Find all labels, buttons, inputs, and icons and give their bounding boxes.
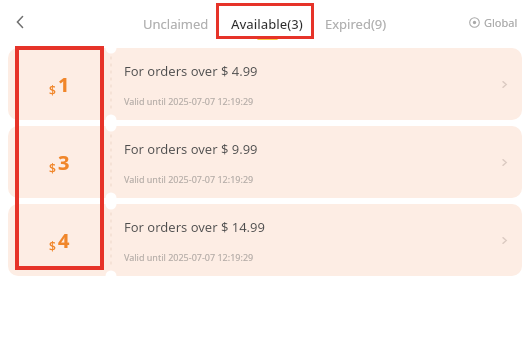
staticText: 4	[58, 227, 70, 254]
button[interactable]: Global	[465, 11, 522, 34]
button[interactable]: $	[8, 48, 522, 120]
staticText: For orders over $ 14.99	[124, 218, 265, 236]
staticText: $	[49, 238, 56, 254]
staticText: For orders over $ 4.99	[124, 62, 258, 80]
staticText: 3	[58, 149, 70, 176]
button[interactable]: Unclaimed	[139, 5, 213, 40]
staticText: Unclaimed	[143, 15, 209, 33]
button[interactable]: Expired(9)	[321, 5, 391, 40]
staticText: Available(3)	[231, 15, 303, 33]
staticText: Expired(9)	[325, 15, 387, 33]
button[interactable]: Available(3)	[227, 5, 307, 40]
staticText: For orders over $ 9.99	[124, 140, 258, 158]
staticText: Valid until 2025-07-07 12:19:29	[124, 251, 254, 263]
button[interactable]: $	[8, 126, 522, 198]
staticText: Global	[484, 15, 518, 30]
staticText: Valid until 2025-07-07 12:19:29	[124, 173, 254, 185]
staticText: $	[49, 82, 56, 98]
staticText: 1	[58, 71, 70, 98]
staticText: $	[49, 160, 56, 176]
staticText: Valid until 2025-07-07 12:19:29	[124, 95, 254, 107]
button[interactable]: $	[8, 204, 522, 276]
button[interactable]: Back	[2, 4, 38, 40]
